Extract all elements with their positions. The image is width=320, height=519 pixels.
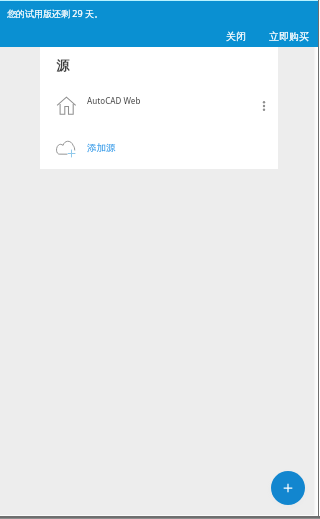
button[interactable]: 关闭 [218,26,254,47]
button[interactable]: 添加源 [40,129,278,161]
staticText: 您的试用版还剩 29 天。 [7,7,103,19]
staticText: 源 [56,57,69,73]
button[interactable]: AutoCAD Web [40,89,278,123]
staticText: 关闭 [226,30,246,43]
button[interactable]: 立即购买 [261,26,317,47]
staticText: 立即购买 [269,30,309,43]
staticText: AutoCAD Web [87,95,141,106]
button[interactable]: More options [253,95,275,117]
button[interactable]: Add [271,471,305,505]
staticText: 添加源 [87,142,116,154]
